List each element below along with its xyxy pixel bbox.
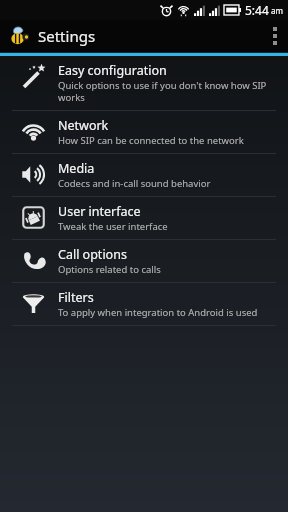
staticText: Settings [38,26,96,46]
staticText: am [271,5,283,16]
staticText: 5:44 [245,2,269,18]
staticText: How SIP can be connected to the network [58,134,244,147]
staticText: To apply when integration to Android is … [58,306,258,319]
staticText: Tweak the user interface [58,220,168,233]
button[interactable]: Easy configuration [0,56,288,110]
button[interactable]: More options [262,20,288,52]
staticText: Filters [58,289,94,306]
staticText: Easy configuration [58,62,167,79]
staticText: Options related to calls [58,263,161,276]
staticText: User interface [58,203,141,220]
staticText: Codecs and in-call sound behavior [58,177,211,190]
button[interactable]: Filters [0,283,288,325]
button[interactable]: Network [0,111,288,153]
button[interactable]: Media [0,154,288,196]
button[interactable]: Call options [0,240,288,282]
staticText: Quick options to use if you don't know h… [58,79,276,104]
button[interactable]: User interface [0,197,288,239]
staticText: Media [58,160,95,177]
staticText: Call options [58,246,127,263]
staticText: Network [58,117,109,134]
